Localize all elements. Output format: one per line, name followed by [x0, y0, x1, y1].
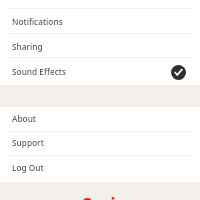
staticText: Sharing — [12, 41, 43, 52]
button[interactable]: About — [0, 107, 200, 132]
other: Sound effects enabled — [171, 65, 186, 80]
button[interactable]: Log Out — [0, 156, 200, 182]
button[interactable]: Sound Effects — [0, 58, 200, 85]
staticText: About — [12, 113, 37, 124]
button[interactable]: Notifications — [0, 9, 200, 34]
button[interactable]: Sharing — [0, 34, 200, 58]
staticText: Notifications — [12, 16, 63, 27]
staticText: Log Out — [12, 162, 44, 173]
staticText: Sonic — [82, 192, 123, 200]
button[interactable] — [0, 0, 200, 9]
button[interactable]: Support — [0, 132, 200, 156]
staticText: Sound Effects — [12, 66, 66, 77]
staticText: Support — [12, 137, 44, 148]
